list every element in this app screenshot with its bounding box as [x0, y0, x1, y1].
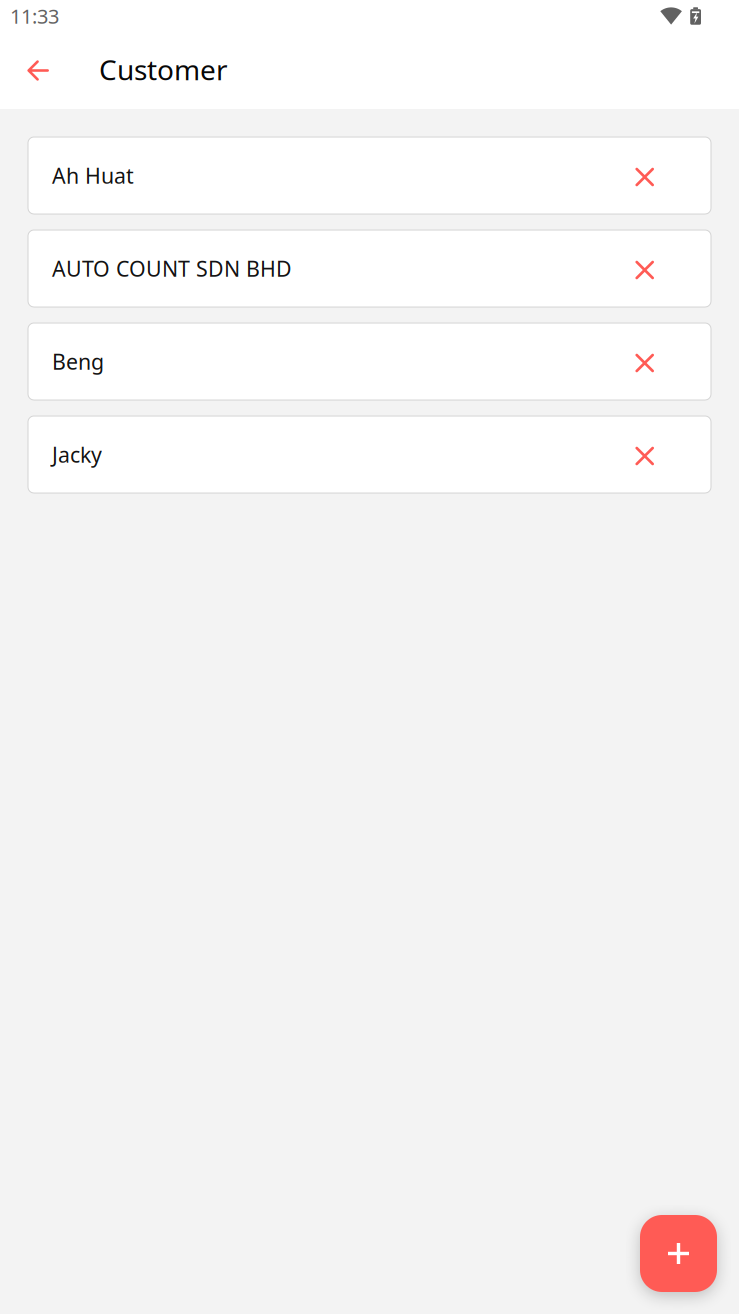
button[interactable]: Add customer: [640, 1215, 717, 1292]
staticText: Customer: [99, 51, 228, 88]
button[interactable]: AUTO COUNT SDN BHD: [28, 230, 711, 307]
staticText: AUTO COUNT SDN BHD: [52, 254, 292, 283]
button[interactable]: Beng: [28, 323, 711, 400]
button[interactable]: Ah Huat: [28, 137, 711, 214]
button[interactable]: Jacky: [28, 416, 711, 493]
staticText: Jacky: [52, 440, 102, 469]
staticText: 11:33: [10, 3, 59, 29]
staticText: Ah Huat: [52, 161, 134, 190]
button[interactable]: Back: [14, 46, 62, 94]
staticText: Beng: [52, 347, 104, 376]
